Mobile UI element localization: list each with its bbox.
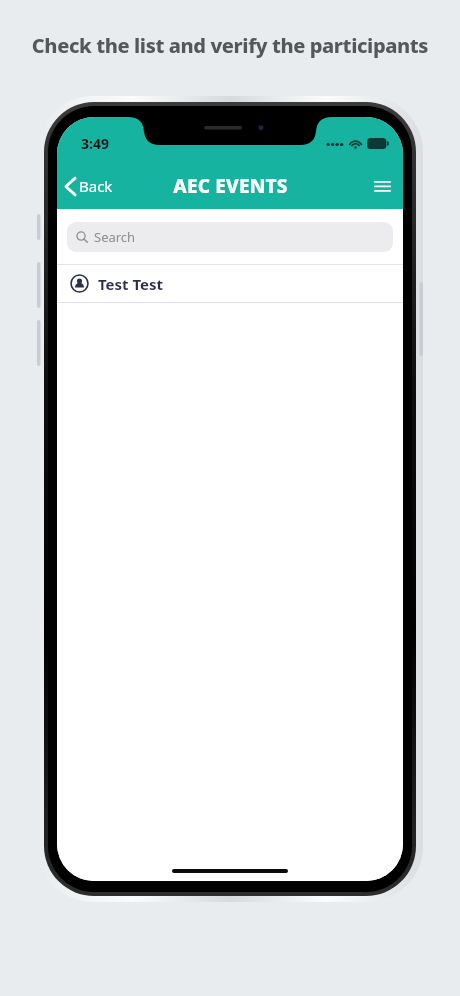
staticText: Test Test xyxy=(98,274,164,294)
button[interactable]: Search xyxy=(67,222,393,252)
staticText: AEC EVENTS xyxy=(173,173,288,199)
staticText: 3:49 xyxy=(81,134,109,153)
staticText: Search xyxy=(94,228,136,246)
button[interactable]: Test Test xyxy=(57,265,403,302)
button[interactable]: Back xyxy=(57,170,125,202)
staticText: Check the list and verify the participan… xyxy=(0,32,460,59)
button[interactable]: Menu xyxy=(362,168,403,204)
staticText: Back xyxy=(79,176,113,196)
